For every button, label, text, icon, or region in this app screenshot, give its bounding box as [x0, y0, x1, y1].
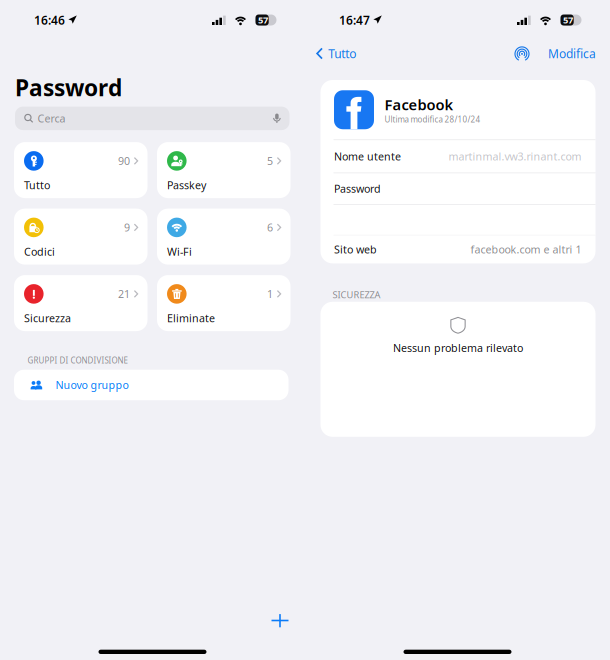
staticText: facebook.com e altri 1 [470, 242, 581, 256]
button[interactable]: AirDrop [514, 45, 530, 61]
staticText: 16:47 [339, 12, 370, 28]
button[interactable]: 1 [157, 275, 290, 331]
staticText: Facebook [384, 95, 453, 114]
button[interactable]: 9 [14, 209, 147, 265]
button[interactable]: 5 [157, 142, 290, 198]
staticText: 9 [124, 220, 130, 234]
staticText: Modifica [548, 45, 596, 61]
button[interactable]: Nuovo gruppo [14, 370, 288, 400]
button[interactable]: 6 [157, 209, 290, 265]
staticText: martinmal.vw3.rinant.com [448, 149, 581, 163]
staticText: Password [334, 182, 381, 196]
staticText: Tutto [24, 178, 50, 192]
staticText: 57 [563, 14, 573, 26]
staticText: Sicurezza [24, 311, 71, 325]
staticText: SICUREZZA [332, 288, 380, 301]
staticText: 21 [118, 287, 130, 301]
staticText: 90 [118, 154, 130, 168]
button[interactable]: Aggiungi [263, 606, 297, 636]
staticText: 5 [267, 154, 273, 168]
staticText: Passkey [167, 178, 206, 192]
button[interactable]: Tutto [316, 45, 356, 61]
button[interactable]: 21 [14, 275, 147, 331]
staticText: GRUPPI DI CONDIVISIONE [27, 355, 127, 366]
staticText: Nuovo gruppo [55, 378, 128, 392]
staticText: Ultima modifica 28/10/24 [384, 114, 480, 125]
button[interactable]: 90 [14, 142, 147, 198]
staticText: Nome utente [334, 149, 401, 163]
staticText: 1 [267, 287, 273, 301]
staticText: 16:46 [34, 12, 65, 28]
staticText: Tutto [328, 45, 356, 61]
staticText: 6 [267, 220, 273, 234]
staticText: Sito web [334, 242, 377, 256]
staticText: Nessun problema rilevato [393, 341, 523, 355]
staticText: Eliminate [167, 311, 215, 325]
staticText: 57 [258, 14, 268, 26]
staticText: Password [15, 72, 122, 103]
staticText: Wi-Fi [167, 244, 192, 259]
staticText: Cerca [37, 111, 65, 125]
staticText: Codici [24, 244, 55, 259]
button[interactable]: Modifica [548, 45, 596, 61]
